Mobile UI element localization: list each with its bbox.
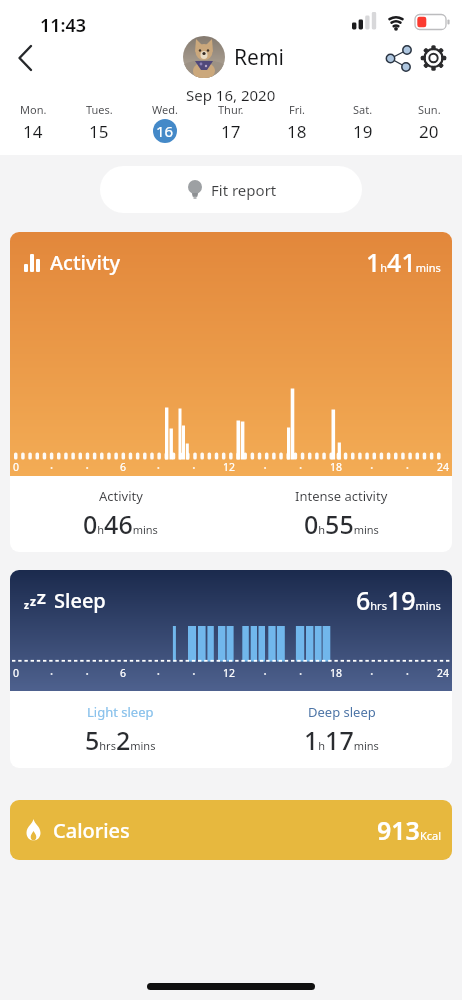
button[interactable]: z [10,570,452,768]
staticText: 0h46mins [83,507,158,541]
staticText: Sleep [54,587,106,614]
staticText: 12 [223,666,236,680]
button[interactable] [380,41,416,75]
staticText: 0 [13,460,20,474]
staticText: 18 [330,460,343,474]
staticText: Sun. [418,102,441,117]
staticText: 24 [437,460,450,474]
staticText: Activity [99,487,143,505]
staticText: Z [37,588,46,608]
staticText: 6 [120,460,127,474]
staticText: 0 [13,666,20,680]
staticText: Thur. [218,102,244,117]
staticText: Deep sleep [308,703,376,721]
button[interactable]: Calories [10,800,452,860]
staticText: 0h55mins [304,507,379,541]
button[interactable]: Fri. [264,102,330,143]
button[interactable]: Thur. [198,102,264,143]
staticText: Mon. [20,102,47,117]
button[interactable]: Sun. [396,102,462,143]
button[interactable]: Fit report [100,166,362,213]
staticText: Fri. [289,102,306,117]
staticText: Light sleep [87,703,154,721]
staticText: 20 [419,120,439,143]
staticText: 11:43 [40,13,87,38]
button[interactable]: Activity [10,232,452,552]
staticText: Activity [50,249,121,276]
button[interactable]: Wed. [132,102,198,143]
staticText: Intense activity [295,487,388,505]
staticText: Remi [234,43,284,72]
staticText: z [24,598,29,612]
button[interactable]: Mon. [0,102,66,143]
staticText: Calories [53,817,130,844]
staticText: 1h17mins [304,723,379,757]
staticText: Sep 16, 2020 [186,85,276,105]
staticText: 16 [156,121,174,141]
staticText: 12 [223,460,236,474]
staticText: 18 [287,120,307,143]
button[interactable] [8,38,46,78]
staticText: Sat. [353,102,373,117]
staticText: 18 [330,666,343,680]
staticText: z [30,593,36,609]
staticText: 1h41mins [366,245,441,279]
button[interactable]: Sat. [330,102,396,143]
staticText: 15 [89,120,109,143]
staticText: 19 [353,120,373,143]
staticText: 913Kcal [377,813,441,847]
staticText: 14 [23,120,43,143]
staticText: 6hrs19mins [356,583,441,617]
staticText: 6 [120,666,127,680]
staticText: Tues. [86,102,113,117]
button[interactable]: Remi [183,36,284,78]
staticText: 17 [221,120,241,143]
staticText: 5hrs2mins [85,723,156,757]
button[interactable]: Tues. [66,102,132,143]
staticText: Wed. [152,102,178,117]
button[interactable] [419,43,449,73]
staticText: 24 [437,666,450,680]
staticText: Fit report [211,180,277,200]
